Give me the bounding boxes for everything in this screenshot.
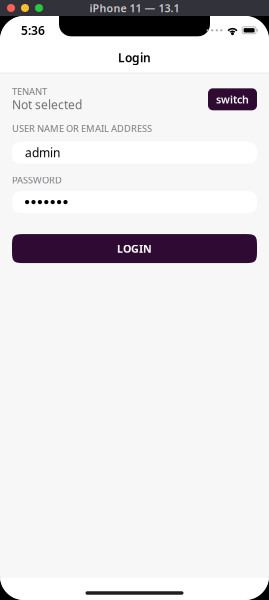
staticText: Login: [118, 50, 151, 66]
staticText: switch: [216, 92, 249, 106]
staticText: admin: [25, 145, 60, 161]
button[interactable]: switch: [208, 88, 257, 110]
staticText: TENANT: [12, 85, 47, 97]
staticText: iPhone 11 — 13.1: [89, 1, 179, 15]
staticText: LOGIN: [117, 241, 152, 256]
staticText: Not selected: [12, 96, 82, 112]
staticText: PASSWORD: [12, 174, 62, 186]
staticText: USER NAME OR EMAIL ADDRESS: [12, 122, 152, 135]
button[interactable]: LOGIN: [12, 234, 257, 263]
staticText: 5:36: [21, 22, 45, 38]
